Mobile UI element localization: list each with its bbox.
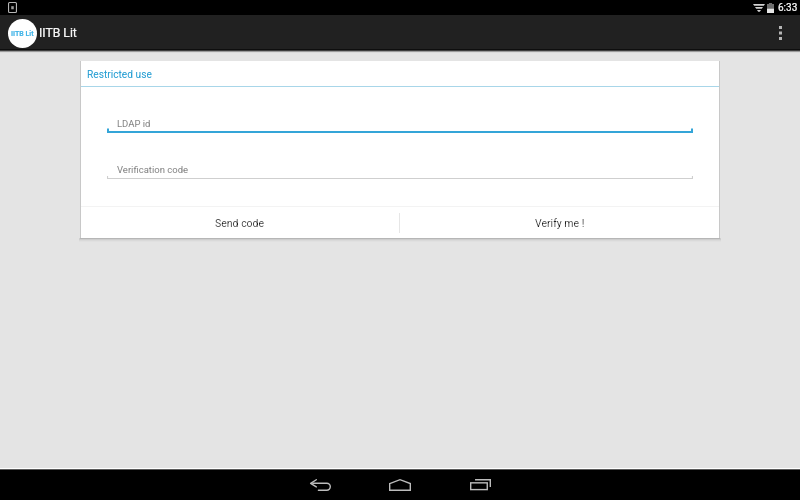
button[interactable]: Verification code [107,164,693,179]
staticText: IITB Lit [39,26,77,40]
button[interactable]: App icon [8,19,37,48]
staticText: Verify me ! [535,217,585,229]
staticText: LDAP id [117,118,151,129]
button[interactable]: LDAP id [107,118,693,133]
staticText: Verification code [117,164,189,175]
button[interactable]: Back [280,470,360,500]
button[interactable]: Verify me ! [400,207,719,238]
button[interactable]: More options [760,15,800,49]
button[interactable]: Home [360,470,440,500]
button[interactable]: Recent apps [440,470,520,500]
button[interactable]: Send code [81,207,399,238]
staticText: IITB Lit [11,30,34,38]
staticText: Restricted use [87,69,152,81]
staticText: Send code [215,217,265,229]
staticText: 6:33 [778,2,798,14]
